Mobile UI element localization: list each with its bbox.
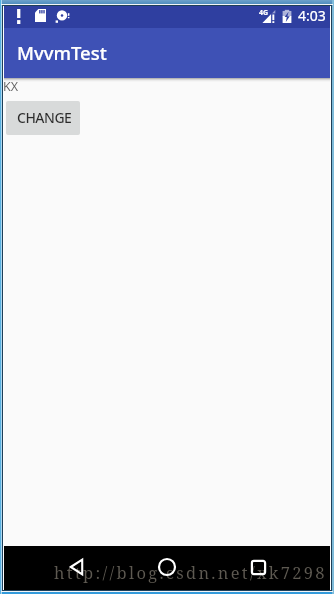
staticText: 4:03 bbox=[298, 6, 326, 25]
staticText: KX bbox=[3, 78, 19, 95]
button[interactable]: Recents bbox=[241, 550, 275, 584]
button[interactable]: Back bbox=[59, 550, 93, 584]
staticText: MvvmTest bbox=[17, 40, 107, 65]
button[interactable]: Home bbox=[150, 550, 184, 584]
staticText: 4G bbox=[259, 8, 269, 18]
button[interactable]: CHANGE bbox=[6, 101, 80, 135]
staticText: CHANGE bbox=[17, 108, 72, 127]
staticText: http://blog.csdn.net/xk7298 bbox=[54, 561, 327, 583]
